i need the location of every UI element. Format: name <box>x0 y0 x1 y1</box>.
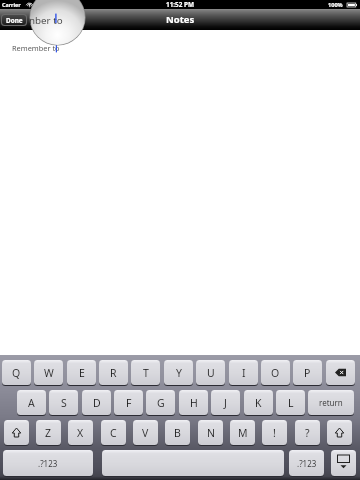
staticText: Y <box>176 366 182 380</box>
button[interactable]: L <box>276 390 305 415</box>
staticText: Q <box>12 366 21 380</box>
staticText: 100% <box>328 1 343 9</box>
staticText: K <box>255 396 262 410</box>
staticText: 11:52 PM <box>166 0 195 9</box>
button[interactable]: .?123 <box>289 450 324 476</box>
staticText: V <box>142 426 149 440</box>
button[interactable]: ! <box>262 420 287 445</box>
button[interactable]: Done <box>2 15 26 25</box>
button[interactable]: return <box>308 390 354 415</box>
button[interactable]: Q <box>2 360 31 385</box>
staticText: D <box>93 396 101 410</box>
staticText: S <box>61 396 67 410</box>
button[interactable] <box>102 450 284 476</box>
button[interactable]: U <box>196 360 225 385</box>
button[interactable]: P <box>293 360 322 385</box>
button[interactable]: F <box>114 390 143 415</box>
staticText: Carrier <box>2 1 21 8</box>
staticText: M <box>238 426 248 440</box>
staticText: ? <box>305 426 310 440</box>
staticText: Done <box>6 16 23 25</box>
button[interactable]: Hide keyboard <box>331 450 356 476</box>
staticText: L <box>288 396 294 410</box>
staticText: Z <box>45 426 52 440</box>
staticText: A <box>28 396 35 410</box>
button[interactable]: V <box>133 420 158 445</box>
button[interactable]: S <box>49 390 78 415</box>
button[interactable]: T <box>131 360 160 385</box>
button[interactable]: Shift <box>327 420 352 445</box>
button[interactable]: .?123 <box>3 450 93 476</box>
staticText: .?123 <box>38 458 58 469</box>
button[interactable]: H <box>179 390 208 415</box>
button[interactable]: W <box>34 360 63 385</box>
staticText: G <box>157 396 165 410</box>
staticText: B <box>174 426 181 440</box>
button[interactable]: A <box>17 390 46 415</box>
staticText: O <box>271 366 280 380</box>
staticText: return <box>319 397 343 408</box>
button[interactable]: C <box>101 420 126 445</box>
staticText: H <box>190 396 198 410</box>
button[interactable]: R <box>99 360 128 385</box>
button[interactable]: O <box>261 360 290 385</box>
staticText: U <box>207 366 215 380</box>
staticText: W <box>44 366 54 380</box>
button[interactable]: N <box>198 420 223 445</box>
button[interactable]: I <box>229 360 258 385</box>
button[interactable]: Z <box>36 420 61 445</box>
staticText: Remember to <box>12 43 60 53</box>
staticText: J <box>224 396 227 410</box>
button[interactable]: Y <box>164 360 193 385</box>
staticText: C <box>110 426 117 440</box>
button[interactable]: Shift <box>4 420 29 445</box>
button[interactable]: X <box>68 420 93 445</box>
staticText: ! <box>273 426 276 440</box>
staticText: I <box>242 366 246 380</box>
button[interactable]: D <box>82 390 111 415</box>
staticText: X <box>77 426 84 440</box>
staticText: Notes <box>166 13 195 26</box>
staticText: R <box>110 366 117 380</box>
staticText: .?123 <box>297 458 317 469</box>
button[interactable]: J <box>211 390 240 415</box>
button[interactable]: B <box>165 420 190 445</box>
staticText: P <box>304 366 311 380</box>
staticText: N <box>207 426 215 440</box>
button[interactable]: E <box>67 360 96 385</box>
staticText: T <box>143 366 149 380</box>
button[interactable]: K <box>244 390 273 415</box>
staticText: F <box>126 396 132 410</box>
button[interactable]: G <box>146 390 175 415</box>
button[interactable]: M <box>230 420 255 445</box>
staticText: nber to <box>29 14 63 27</box>
button[interactable]: ? <box>295 420 320 445</box>
staticText: E <box>79 366 85 380</box>
button[interactable]: Backspace <box>326 360 355 385</box>
